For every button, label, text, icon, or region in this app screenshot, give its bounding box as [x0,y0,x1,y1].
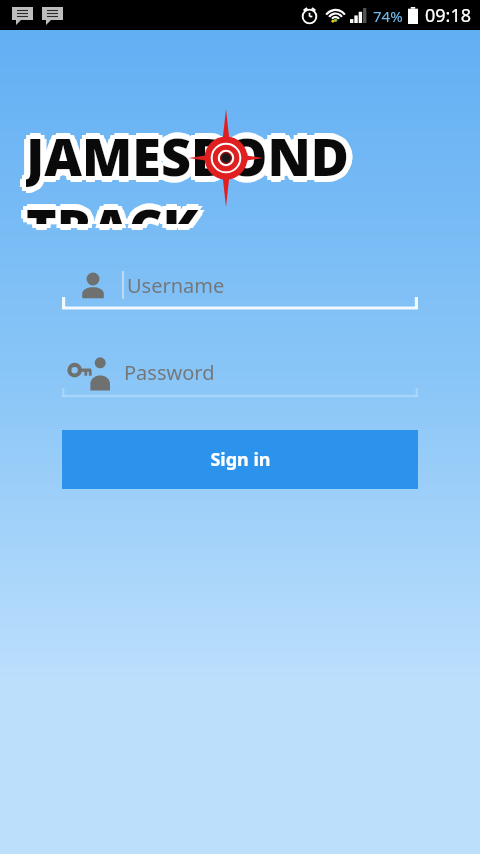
staticText: JAMESBOND TRACK [31,120,480,224]
staticText: JAMESBOND TRACK [26,115,480,219]
staticText: JAMESBOND TRACK [22,116,480,220]
button[interactable]: Sign in [62,430,418,489]
button[interactable]: Password [62,345,418,399]
button[interactable]: Username [62,258,418,312]
staticText: JAMESBOND TRACK [30,116,480,220]
staticText: 09:18 [425,3,472,28]
staticText: JAMESBOND TRACK [26,114,480,218]
staticText: JAMESBOND TRACK [32,120,480,224]
staticText: JAMESBOND TRACK [30,124,480,228]
staticText: Password [124,359,215,386]
staticText: JAMESBOND TRACK [22,124,480,228]
staticText: JAMESBOND TRACK [26,125,480,229]
staticText: 74% [373,6,403,26]
staticText: JAMESBOND TRACK [26,126,480,230]
staticText: JAMESBOND TRACK [26,120,480,224]
staticText: JAMESBOND TRACK [21,120,480,224]
staticText: JAMESBOND TRACK [20,120,480,224]
staticText: Username [127,272,225,299]
staticText: Sign in [210,447,271,472]
